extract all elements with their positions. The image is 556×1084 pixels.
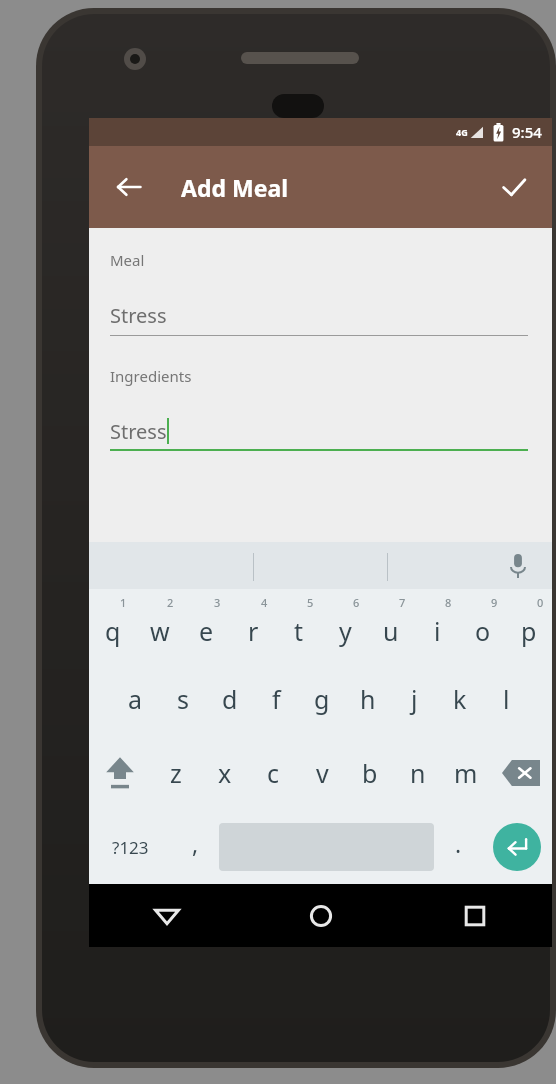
button[interactable]: v xyxy=(298,736,346,810)
button[interactable]: g xyxy=(299,662,345,736)
staticText: 8 xyxy=(445,595,452,610)
staticText: 4G xyxy=(456,126,468,138)
button[interactable]: f xyxy=(253,662,299,736)
button[interactable]: s xyxy=(159,662,206,736)
button[interactable]: ?123 xyxy=(89,810,171,884)
staticText: s xyxy=(177,682,189,716)
button[interactable]: Voice input xyxy=(498,546,538,586)
staticText: , xyxy=(192,828,199,859)
staticText: c xyxy=(267,756,280,790)
button[interactable]: Stress xyxy=(110,418,528,451)
staticText: f xyxy=(272,682,281,716)
button[interactable]: j xyxy=(391,662,437,736)
staticText: q xyxy=(105,614,121,648)
staticText: t xyxy=(294,614,304,648)
staticText: 1 xyxy=(120,595,127,610)
staticText: u xyxy=(383,614,399,648)
staticText: e xyxy=(199,614,214,648)
staticText: r xyxy=(248,614,259,648)
staticText: l xyxy=(503,682,510,716)
button[interactable]: 7 xyxy=(368,589,414,662)
staticText: g xyxy=(314,682,330,716)
button[interactable]: 5 xyxy=(276,589,322,662)
staticText: Meal xyxy=(110,250,145,270)
staticText: Add Meal xyxy=(181,172,289,203)
button[interactable]: k xyxy=(437,662,483,736)
staticText: ?123 xyxy=(112,836,149,859)
button[interactable]: b xyxy=(346,736,394,810)
button[interactable]: Enter xyxy=(482,810,552,884)
staticText: 9 xyxy=(491,595,498,610)
button[interactable]: x xyxy=(200,736,249,810)
button[interactable]: l xyxy=(483,662,529,736)
staticText: x xyxy=(218,756,232,790)
staticText: 3 xyxy=(214,595,221,610)
button[interactable]: h xyxy=(345,662,391,736)
staticText: v xyxy=(316,756,329,790)
staticText: Stress xyxy=(110,302,167,329)
staticText: o xyxy=(475,614,491,648)
button[interactable]: 4 xyxy=(230,589,276,662)
button[interactable]: c xyxy=(249,736,298,810)
staticText: m xyxy=(454,756,478,790)
button[interactable]: Shift xyxy=(89,736,151,810)
button[interactable]: Back xyxy=(89,884,244,947)
button[interactable]: 6 xyxy=(322,589,368,662)
button[interactable]: Stress xyxy=(110,302,528,336)
staticText: w xyxy=(150,614,170,648)
staticText: 5 xyxy=(307,595,314,610)
button[interactable]: m xyxy=(442,736,490,810)
staticText: k xyxy=(453,682,467,716)
staticText: h xyxy=(360,682,376,716)
staticText: Stress xyxy=(110,418,167,445)
button[interactable]: a xyxy=(112,662,159,736)
button[interactable]: Home xyxy=(244,884,398,947)
button[interactable]: 9 xyxy=(460,589,506,662)
staticText: 7 xyxy=(399,595,406,610)
staticText: b xyxy=(362,756,378,790)
button[interactable]: Save xyxy=(488,161,540,213)
button[interactable]: Backspace xyxy=(490,736,552,810)
button[interactable]: d xyxy=(206,662,253,736)
staticText: 4 xyxy=(261,595,268,610)
button[interactable]: 0 xyxy=(506,589,552,662)
button[interactable]: n xyxy=(394,736,442,810)
staticText: j xyxy=(411,682,418,716)
staticText: 2 xyxy=(167,595,174,610)
staticText: d xyxy=(222,682,238,716)
button[interactable]: , xyxy=(171,810,219,884)
button[interactable]: 2 xyxy=(136,589,183,662)
button[interactable]: Back xyxy=(103,161,155,213)
staticText: y xyxy=(339,614,352,648)
staticText: 6 xyxy=(353,595,360,610)
staticText: z xyxy=(170,756,182,790)
staticText: 9:54 xyxy=(512,122,542,142)
button[interactable]: Recent apps xyxy=(398,884,552,947)
staticText: . xyxy=(455,828,462,859)
staticText: i xyxy=(434,614,441,648)
staticText: a xyxy=(128,682,143,716)
staticText: 0 xyxy=(537,595,544,610)
button[interactable]: 3 xyxy=(183,589,230,662)
staticText: p xyxy=(521,614,537,648)
button[interactable]: z xyxy=(151,736,200,810)
staticText: n xyxy=(410,756,426,790)
button[interactable]: 8 xyxy=(414,589,460,662)
staticText: Ingredients xyxy=(110,366,192,386)
button[interactable]: 1 xyxy=(89,589,136,662)
button[interactable]: . xyxy=(434,810,482,884)
